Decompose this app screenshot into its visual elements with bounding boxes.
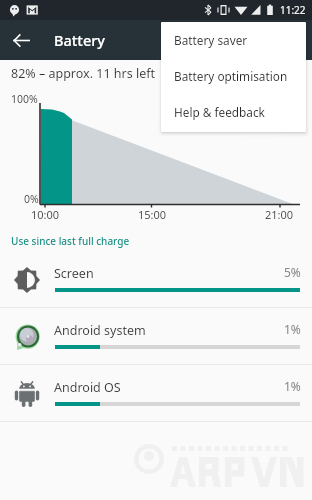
staticText: Screen [54, 265, 94, 282]
staticText: 21:00 [265, 207, 294, 222]
staticText: 82% – approx. 11 hrs left [11, 65, 156, 82]
staticText: 100% [11, 92, 38, 106]
button[interactable]: Android system [0, 308, 312, 365]
staticText: 15:00 [138, 207, 167, 222]
button[interactable]: Back [6, 25, 36, 55]
staticText: 11:22 [280, 3, 306, 17]
button[interactable]: Battery saver [161, 22, 306, 58]
staticText: Battery optimisation [174, 68, 288, 84]
staticText: 0% [24, 192, 39, 206]
staticText: Use since last full charge [11, 234, 130, 248]
staticText: 1% [284, 321, 301, 337]
button[interactable]: Screen [0, 251, 312, 308]
staticText: 1% [284, 378, 301, 394]
staticText: Battery [54, 30, 105, 50]
staticText: 5% [284, 264, 301, 280]
button[interactable]: Battery optimisation [161, 58, 306, 94]
button[interactable]: Help & feedback [161, 94, 306, 130]
staticText: 10:00 [31, 207, 60, 222]
button[interactable]: Android OS [0, 365, 312, 422]
staticText: Android OS [54, 379, 121, 396]
staticText: Help & feedback [174, 104, 265, 120]
staticText: Battery saver [174, 32, 248, 48]
staticText: Android system [54, 322, 146, 339]
